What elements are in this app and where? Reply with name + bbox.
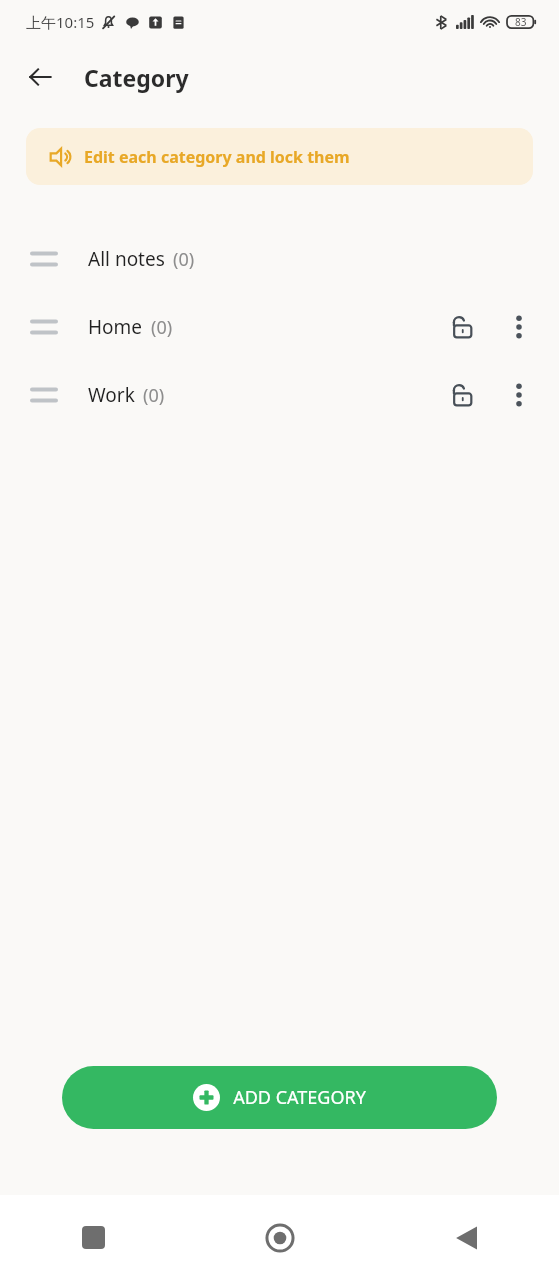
button[interactable]: Lock category xyxy=(440,304,486,350)
button[interactable]: Reorder xyxy=(30,244,60,274)
staticText: ADD CATEGORY xyxy=(233,1085,366,1110)
staticText: Home xyxy=(88,314,143,340)
staticText: (0) xyxy=(143,383,165,408)
button[interactable]: Recents xyxy=(0,1195,187,1280)
staticText: (0) xyxy=(151,315,173,340)
button[interactable]: More options xyxy=(497,305,541,349)
button[interactable]: More options xyxy=(497,373,541,417)
button[interactable]: Edit each category and lock them xyxy=(26,128,533,185)
staticText: All notes xyxy=(88,246,165,272)
button[interactable]: Back xyxy=(18,55,62,99)
button[interactable]: Reorder xyxy=(30,380,60,410)
button[interactable]: ADD CATEGORY xyxy=(62,1066,497,1129)
button[interactable]: Back xyxy=(373,1195,559,1280)
staticText: (0) xyxy=(173,247,195,272)
button[interactable]: Reorder xyxy=(0,361,559,429)
staticText: Category xyxy=(84,62,189,93)
button[interactable]: Reorder xyxy=(30,312,60,342)
staticText: Work xyxy=(88,382,135,408)
staticText: Edit each category and lock them xyxy=(84,146,350,168)
button[interactable]: Reorder xyxy=(0,225,559,293)
button[interactable]: Home xyxy=(187,1195,373,1280)
staticText: 上午10:15 xyxy=(26,12,95,32)
button[interactable]: Lock category xyxy=(440,372,486,418)
button[interactable]: Reorder xyxy=(0,293,559,361)
staticText: 83 xyxy=(515,15,527,29)
